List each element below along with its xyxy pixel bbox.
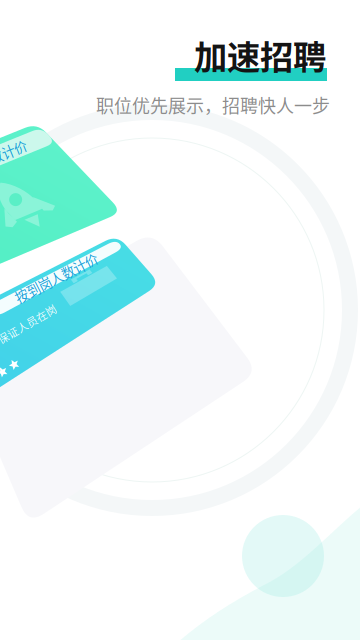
staticText: 加速招聘 [194,31,326,79]
staticText: 职位优先展示，招聘快人一步 [96,92,330,118]
staticText: 按人效付费，保证人员在岗 [0,333,64,348]
staticText: 按到岗人数计价 [11,268,102,287]
staticText: 按客服数计价 [0,149,29,168]
